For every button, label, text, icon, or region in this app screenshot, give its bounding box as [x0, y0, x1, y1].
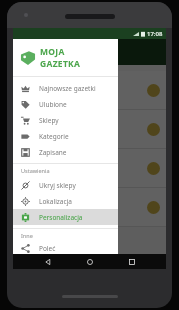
staticText: Najnowsze gazetki: [39, 84, 96, 93]
button[interactable]: MOJA: [13, 39, 118, 76]
button[interactable]: Recents: [124, 254, 139, 269]
button[interactable]: Home: [82, 254, 97, 269]
button[interactable]: Ulubione: [13, 96, 118, 112]
button[interactable]: Kategorie: [13, 128, 118, 144]
staticText: MOJA: [40, 46, 65, 58]
staticText: Poleć: [39, 244, 56, 253]
button[interactable]: Poleć: [13, 242, 118, 254]
staticText: GAZETKA: [40, 58, 81, 70]
staticText: Personalizacja: [39, 213, 83, 222]
button[interactable]: Zapisane: [13, 144, 118, 160]
button[interactable]: Personalizacja: [13, 209, 118, 225]
staticText: Lokalizacja: [39, 197, 72, 206]
staticText: Ustawienia: [21, 167, 50, 174]
staticText: Sklepy: [39, 116, 59, 125]
button[interactable]: Sklepy: [13, 112, 118, 128]
staticText: Zapisane: [39, 148, 67, 157]
button[interactable]: Najnowsze gazetki: [13, 80, 118, 96]
staticText: Ukryj sklepy: [39, 181, 76, 190]
staticText: Inne: [21, 232, 33, 239]
staticText: Kategorie: [39, 132, 69, 141]
staticText: Ulubione: [39, 100, 67, 109]
button[interactable]: Ukryj sklepy: [13, 177, 118, 193]
button[interactable]: Lokalizacja: [13, 193, 118, 209]
button[interactable]: Back: [40, 254, 55, 269]
staticText: 17:08: [147, 30, 163, 38]
